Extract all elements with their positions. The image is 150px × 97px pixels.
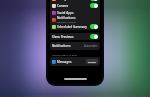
staticText: Banners, Sounds [57, 20, 76, 23]
staticText: GOVERNMENT ALERTS [52, 53, 78, 56]
button[interactable]: On [90, 3, 98, 8]
staticText: Scheduled Summary [57, 25, 87, 29]
button[interactable]: Social Apps [50, 9, 100, 16]
button[interactable]: On [90, 0, 98, 1]
staticText: Notifications [57, 16, 76, 20]
button[interactable]: On [90, 34, 98, 39]
button[interactable]: Notifications Grouping [50, 42, 100, 50]
staticText: Instagram [57, 0, 73, 1]
button[interactable]: Scheduled Summary [50, 23, 100, 30]
button[interactable]: Enable [86, 59, 98, 64]
button[interactable]: Notifications [50, 16, 100, 23]
staticText: Enable [88, 60, 96, 63]
staticText: Notifications Grouping [52, 44, 84, 48]
button[interactable]: Messages [50, 57, 100, 66]
button[interactable]: On [90, 24, 98, 29]
staticText: Social Apps [57, 11, 74, 15]
staticText: Show Previews [52, 35, 90, 39]
button[interactable]: Show Previews [50, 33, 100, 40]
staticText: Messages [57, 60, 86, 64]
staticText: Camera [57, 4, 69, 8]
button[interactable]: Instagram [50, 0, 100, 2]
staticText: Automatic [84, 44, 98, 48]
button[interactable]: Camera [50, 2, 100, 9]
